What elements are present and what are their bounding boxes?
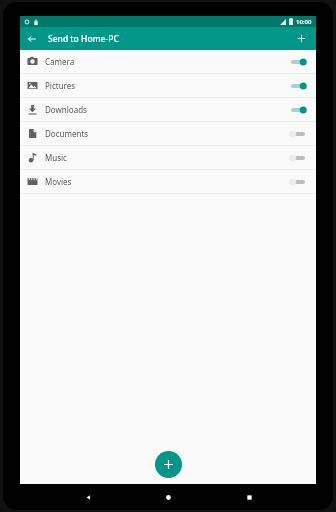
staticText: 10:00 <box>296 18 312 26</box>
button[interactable]: Camera <box>20 50 316 73</box>
button[interactable]: Pictures <box>20 74 316 97</box>
button[interactable]: Music <box>20 146 316 169</box>
button[interactable]: Movies <box>20 170 316 193</box>
button[interactable]: Home <box>155 484 181 510</box>
button[interactable]: Toggle <box>289 79 309 93</box>
staticText: Music <box>45 152 67 163</box>
staticText: Documents <box>45 128 89 139</box>
button[interactable]: Documents <box>20 122 316 145</box>
staticText: Pictures <box>45 80 76 91</box>
button[interactable]: Toggle <box>289 103 309 117</box>
button[interactable]: Back <box>75 484 101 510</box>
button[interactable]: Downloads <box>20 98 316 121</box>
button[interactable]: Recents <box>236 484 262 510</box>
staticText: Downloads <box>45 104 87 115</box>
button[interactable]: Toggle <box>289 55 309 69</box>
staticText: Camera <box>45 56 75 67</box>
button[interactable]: Add <box>155 451 182 478</box>
staticText: Movies <box>45 176 72 187</box>
staticText: Send to Home-PC <box>48 33 119 45</box>
button[interactable]: Toggle <box>289 127 309 141</box>
button[interactable]: Toggle <box>289 175 309 189</box>
button[interactable]: Toggle <box>289 151 309 165</box>
button[interactable]: Back <box>20 27 43 50</box>
button[interactable]: Add <box>290 27 313 50</box>
